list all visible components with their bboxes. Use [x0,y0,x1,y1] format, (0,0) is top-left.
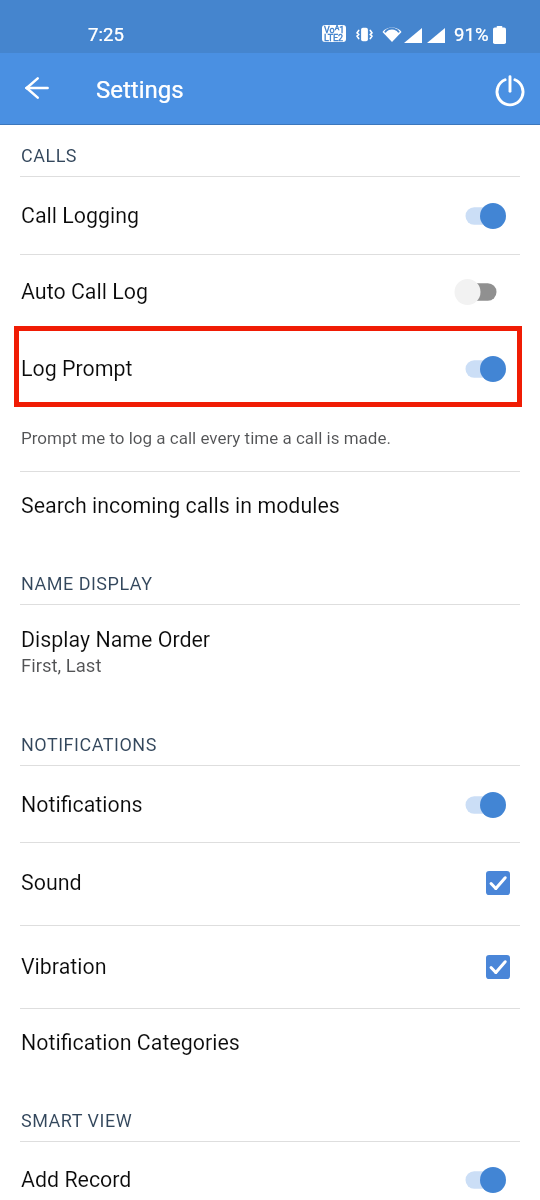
staticText: Notifications [21,792,143,817]
staticText: Call Logging [21,203,140,228]
button[interactable]: Back [14,65,60,111]
button[interactable]: Notifications [0,765,540,842]
staticText: Vibration [21,954,107,979]
staticText: Display Name Order [21,627,211,652]
button[interactable]: Sound [0,842,540,925]
button[interactable]: Call Logging [0,176,540,254]
staticText: Voᴬ1 [324,25,345,36]
button[interactable]: Power [487,67,533,113]
staticText: Log Prompt [21,356,133,381]
staticText: SMART VIEW [21,1110,133,1131]
staticText: Add Record [21,1167,132,1192]
staticText: CALLS [21,145,78,166]
staticText: 7:25 [88,24,124,46]
button[interactable]: Vibration [0,925,540,1008]
button[interactable]: Display Name Order [0,604,540,700]
button[interactable]: Notification Categories [0,1008,540,1078]
staticText: First, Last [21,655,102,677]
staticText: Notification Categories [21,1030,240,1055]
staticText: Sound [21,870,82,895]
staticText: Prompt me to log a call every time a cal… [21,428,391,448]
staticText: Auto Call Log [21,279,148,304]
staticText: NAME DISPLAY [21,573,153,594]
staticText: Search incoming calls in modules [21,493,340,518]
button[interactable]: Auto Call Log [0,254,540,330]
staticText: 91% [454,24,489,46]
staticText: NOTIFICATIONS [21,734,157,755]
staticText: Settings [96,76,184,104]
button[interactable]: Log Prompt [0,330,540,406]
button[interactable]: Search incoming calls in modules [0,471,540,545]
button[interactable]: Add Record [0,1141,540,1200]
staticText: LTE2 [324,33,344,42]
